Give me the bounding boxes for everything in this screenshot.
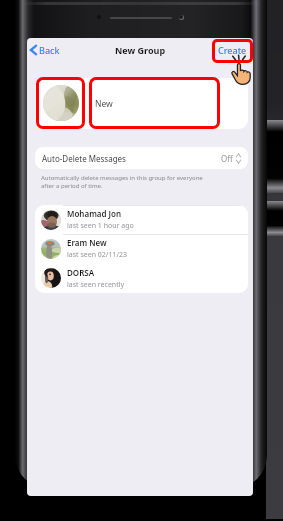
button[interactable]: Create	[212, 38, 253, 62]
button[interactable]: DORSA	[35, 263, 248, 293]
staticText: last seen recently	[67, 280, 125, 290]
button[interactable]: Mohamad Jon	[35, 205, 248, 234]
staticText: Back	[39, 44, 60, 56]
staticText: Off	[221, 153, 233, 164]
staticText: Create	[218, 44, 247, 56]
staticText: last seen 1 hour ago	[67, 221, 134, 231]
staticText: Automatically delete messages in this gr…	[41, 174, 203, 190]
button[interactable]: New	[89, 78, 241, 129]
button[interactable]: Auto-Delete Messages	[35, 147, 248, 169]
button[interactable]: Eram New	[35, 234, 248, 263]
button[interactable]: Back	[27, 38, 64, 62]
staticText: DORSA	[67, 267, 95, 278]
staticText: Eram New	[67, 237, 107, 248]
button[interactable]: Set group photo	[43, 85, 79, 121]
staticText: Auto-Delete Messages	[42, 153, 126, 164]
other: Tap indicator	[230, 55, 253, 87]
staticText: New	[95, 98, 113, 110]
staticText: New Group	[115, 44, 166, 56]
staticText: Mohamad Jon	[67, 208, 122, 219]
staticText: last seen 02/11/23	[67, 250, 128, 260]
